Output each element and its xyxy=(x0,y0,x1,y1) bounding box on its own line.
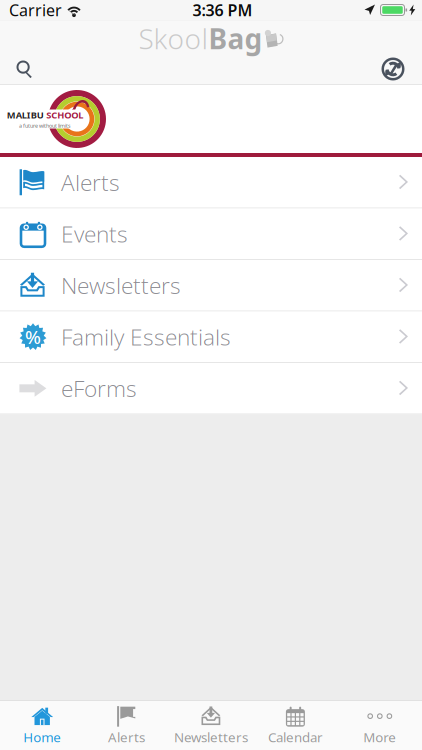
staticText: Alerts xyxy=(108,728,145,746)
button[interactable]: Alerts xyxy=(84,701,169,750)
button[interactable]: Refresh xyxy=(371,54,415,84)
staticText: 3:36 PM xyxy=(192,0,252,21)
staticText: Newsletters xyxy=(174,728,248,746)
staticText: Newsletters xyxy=(61,270,181,301)
staticText: eForms xyxy=(61,373,137,404)
staticText: MALIBU xyxy=(7,109,44,121)
staticText: Skool xyxy=(138,20,208,57)
button[interactable]: Calendar xyxy=(253,701,338,750)
staticText: % xyxy=(25,324,41,349)
button[interactable]: Home xyxy=(0,701,84,750)
button[interactable]: Events xyxy=(0,208,422,260)
staticText: Calendar xyxy=(268,728,323,746)
staticText: a future without limits xyxy=(19,122,71,129)
button[interactable]: More xyxy=(338,701,422,750)
button[interactable]: eForms xyxy=(0,363,422,414)
staticText: Alerts xyxy=(61,167,120,198)
staticText: Family Essentials xyxy=(61,321,231,352)
staticText: SCHOOL xyxy=(46,109,83,121)
button[interactable]: % xyxy=(0,311,422,363)
staticText: More xyxy=(363,728,396,746)
staticText: Carrier xyxy=(9,0,62,21)
staticText: Bag xyxy=(208,20,262,57)
staticText: Events xyxy=(61,218,128,249)
staticText: Home xyxy=(23,728,61,746)
button[interactable]: Newsletters xyxy=(169,701,253,750)
button[interactable]: Search xyxy=(2,54,46,84)
button[interactable]: Newsletters xyxy=(0,260,422,311)
button[interactable]: Alerts xyxy=(0,157,422,208)
